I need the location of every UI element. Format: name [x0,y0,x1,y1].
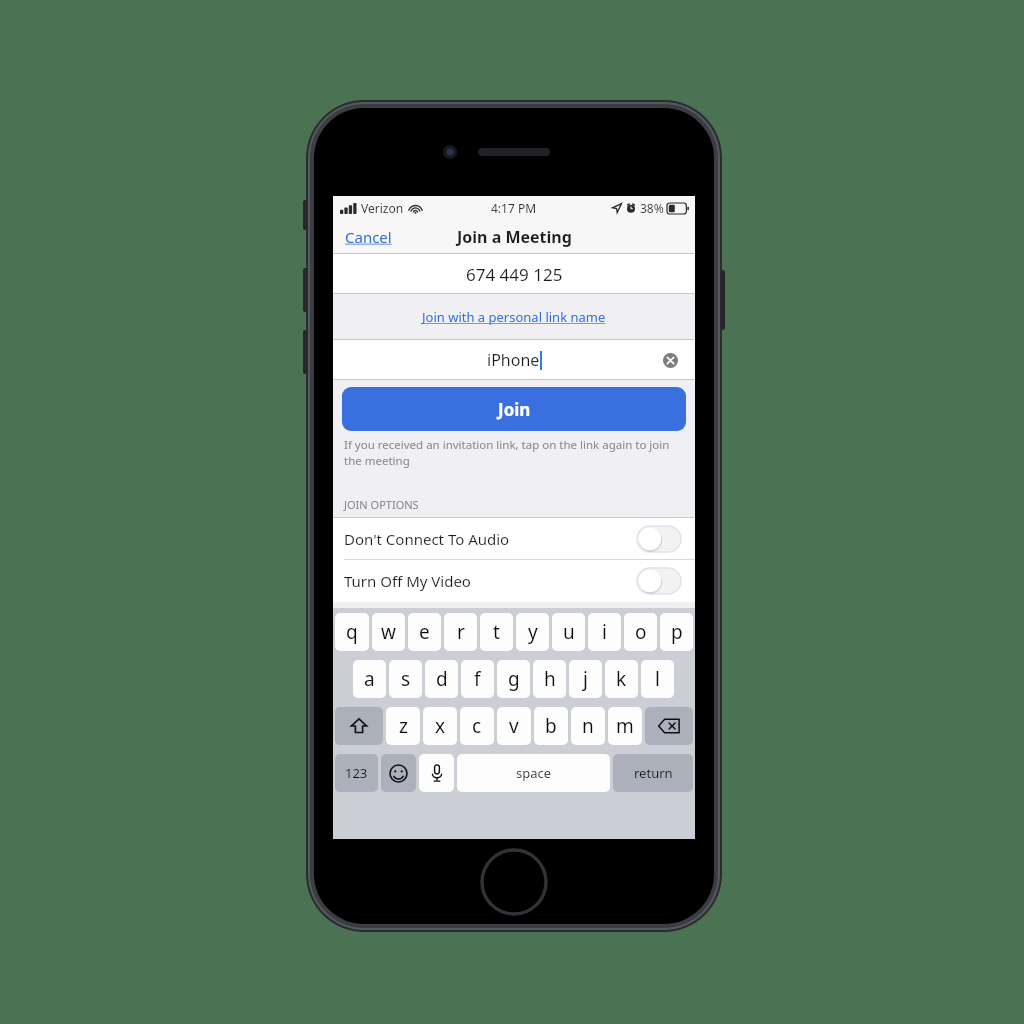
staticText: m [616,713,634,739]
button[interactable]: g [497,660,530,698]
button[interactable]: Shift [335,707,383,745]
staticText: l [655,666,660,692]
staticText: Join [498,398,531,421]
staticText: a [364,666,375,692]
button[interactable]: d [425,660,458,698]
button[interactable]: iPhone [333,340,695,380]
button[interactable]: t [480,613,513,651]
staticText: g [508,666,520,692]
button[interactable]: Emoji [381,754,416,792]
button[interactable]: return [613,754,693,792]
button[interactable]: Join with a personal link name [333,294,695,340]
button[interactable]: r [444,613,477,651]
staticText: 4:17 PM [491,200,537,216]
staticText: i [602,619,607,645]
button[interactable]: Clear text [659,349,681,371]
button[interactable]: h [533,660,566,698]
staticText: Join with a personal link name [422,308,606,326]
staticText: return [634,764,673,782]
button[interactable]: o [624,613,657,651]
staticText: v [509,713,519,739]
button[interactable]: z [386,707,420,745]
staticText: JOIN OPTIONS [344,497,419,512]
staticText: o [635,619,647,645]
button[interactable]: Dictation [419,754,454,792]
button[interactable]: 674 449 125 [333,254,695,294]
staticText: j [583,666,588,692]
staticText: Join a Meeting [457,226,572,248]
staticText: p [671,619,683,645]
button[interactable]: c [460,707,494,745]
staticText: r [457,619,465,645]
staticText: iPhone [487,349,540,371]
staticText: If you received an invitation link, tap … [344,437,684,468]
staticText: space [516,764,552,782]
button[interactable]: l [641,660,674,698]
staticText: y [528,619,538,645]
staticText: n [582,713,594,739]
staticText: k [616,666,627,692]
staticText: 674 449 125 [466,263,563,286]
button[interactable]: n [571,707,605,745]
button[interactable]: Cancel [341,223,396,251]
button[interactable]: q [335,613,369,651]
button[interactable]: i [588,613,621,651]
staticText: s [401,666,411,692]
staticText: w [381,619,396,645]
staticText: 38% [640,200,664,216]
staticText: e [419,619,430,645]
button[interactable]: a [353,660,386,698]
staticText: Cancel [345,227,392,247]
staticText: q [346,619,358,645]
button[interactable]: j [569,660,602,698]
staticText: t [493,619,500,645]
button[interactable]: Turn Off My Video [637,568,681,594]
button[interactable]: space [457,754,610,792]
button[interactable]: v [497,707,531,745]
staticText: f [474,666,481,692]
button[interactable]: f [461,660,494,698]
staticText: h [544,666,556,692]
button[interactable]: x [423,707,457,745]
staticText: Don't Connect To Audio [344,529,510,549]
staticText: z [399,713,408,739]
button[interactable]: Don't Connect To Audio [333,518,695,560]
staticText: b [545,713,557,739]
button[interactable]: Turn Off My Video [333,560,695,602]
button[interactable]: k [605,660,638,698]
button[interactable]: Backspace [645,707,693,745]
button[interactable]: e [408,613,441,651]
button[interactable]: Join [342,387,686,431]
staticText: Verizon [361,200,404,216]
button[interactable]: s [389,660,422,698]
staticText: d [436,666,448,692]
button[interactable]: m [608,707,642,745]
button[interactable]: b [534,707,568,745]
button[interactable]: y [516,613,549,651]
button[interactable]: 123 [335,754,378,792]
button[interactable]: Don't Connect To Audio [637,526,681,552]
staticText: 123 [345,764,368,782]
button[interactable]: p [660,613,693,651]
button[interactable]: w [372,613,405,651]
staticText: x [435,713,446,739]
staticText: Turn Off My Video [344,571,471,591]
staticText: u [563,619,575,645]
staticText: c [472,713,482,739]
button[interactable]: u [552,613,585,651]
